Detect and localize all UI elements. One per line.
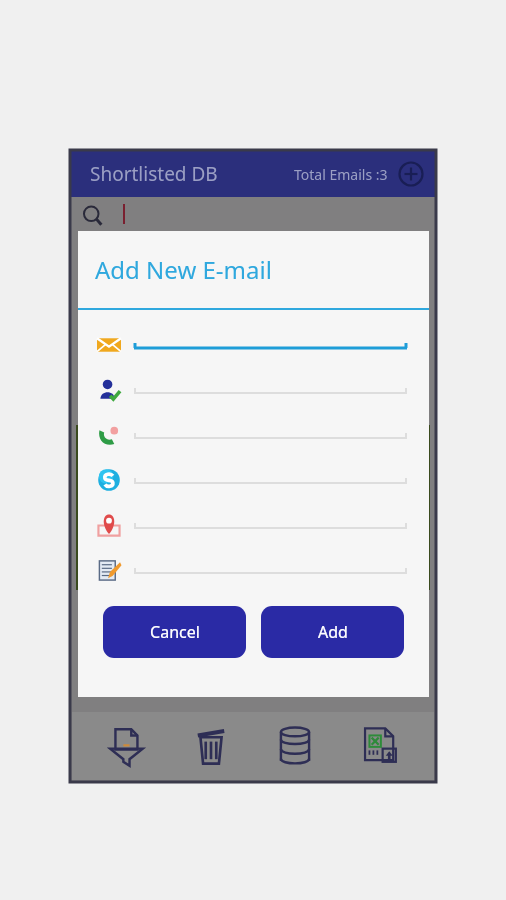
staticText: Total Emails :3 [294, 165, 388, 184]
button[interactable]: Add [261, 606, 404, 658]
staticText: Add New E-mail [95, 253, 272, 286]
button[interactable]: Database [264, 715, 326, 777]
button[interactable] [78, 412, 429, 457]
button[interactable]: Export to XLS [349, 715, 411, 777]
button[interactable]: Add new email [396, 159, 426, 189]
button[interactable] [78, 322, 429, 367]
button[interactable] [78, 502, 429, 547]
button[interactable]: Delete [180, 715, 242, 777]
button[interactable] [70, 197, 436, 235]
button[interactable]: Cancel [103, 606, 246, 658]
staticText: Shortlisted DB [90, 161, 218, 187]
button[interactable]: Filter text file [95, 715, 157, 777]
button[interactable] [78, 457, 429, 502]
button[interactable] [78, 547, 429, 592]
staticText: Add [318, 621, 348, 643]
button[interactable] [78, 367, 429, 412]
staticText: Cancel [150, 621, 200, 643]
